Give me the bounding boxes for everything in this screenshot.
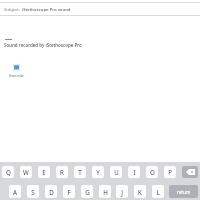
button[interactable]: A xyxy=(9,185,21,198)
button[interactable]: S xyxy=(27,185,39,198)
staticText: O xyxy=(150,168,155,176)
staticText: J xyxy=(121,188,123,196)
button[interactable]: Q xyxy=(2,166,14,178)
staticText: G xyxy=(85,188,90,196)
staticText: K xyxy=(138,188,142,196)
staticText: L xyxy=(156,188,160,196)
button[interactable]: Subject: xyxy=(4,3,200,15)
button[interactable]: H xyxy=(99,185,111,198)
staticText: U xyxy=(114,168,119,176)
button[interactable]: U xyxy=(110,166,122,178)
staticText: H xyxy=(103,188,108,196)
staticText: Subject: xyxy=(4,6,20,12)
staticText: Y xyxy=(96,168,100,176)
staticText: A xyxy=(13,188,17,196)
button[interactable]: G xyxy=(81,185,93,198)
staticText: Q xyxy=(6,168,11,176)
staticText: T xyxy=(78,168,82,176)
button[interactable]: W xyxy=(20,166,32,178)
button[interactable]: E xyxy=(38,166,50,178)
button[interactable]: J xyxy=(116,185,128,198)
button[interactable]: L xyxy=(152,185,164,198)
button[interactable]: I xyxy=(128,166,140,178)
button[interactable]: Heart.m4a xyxy=(9,64,24,78)
button[interactable]: O xyxy=(146,166,158,178)
button[interactable]: P xyxy=(164,166,176,178)
button[interactable]: Y xyxy=(92,166,104,178)
button[interactable]: K xyxy=(134,185,146,198)
button[interactable]: D xyxy=(45,185,57,198)
staticText: Sound recorded by iStethoscope Pro xyxy=(4,42,82,48)
staticText: F xyxy=(67,188,71,196)
staticText: Heart.m4a xyxy=(9,74,24,78)
staticText: return xyxy=(177,189,191,195)
staticText: D xyxy=(49,188,54,196)
button[interactable]: T xyxy=(74,166,86,178)
button[interactable]: R xyxy=(56,166,68,178)
staticText: S xyxy=(31,188,35,196)
staticText: iStethoscope Pro sound xyxy=(22,6,71,12)
button[interactable]: F xyxy=(63,185,75,198)
staticText: E xyxy=(42,168,46,176)
staticText: I xyxy=(133,168,136,176)
staticText: R xyxy=(60,168,64,176)
button[interactable]: Backspace xyxy=(182,166,198,178)
staticText: W xyxy=(23,168,29,176)
button[interactable]: return xyxy=(169,185,198,198)
staticText: P xyxy=(168,168,172,176)
